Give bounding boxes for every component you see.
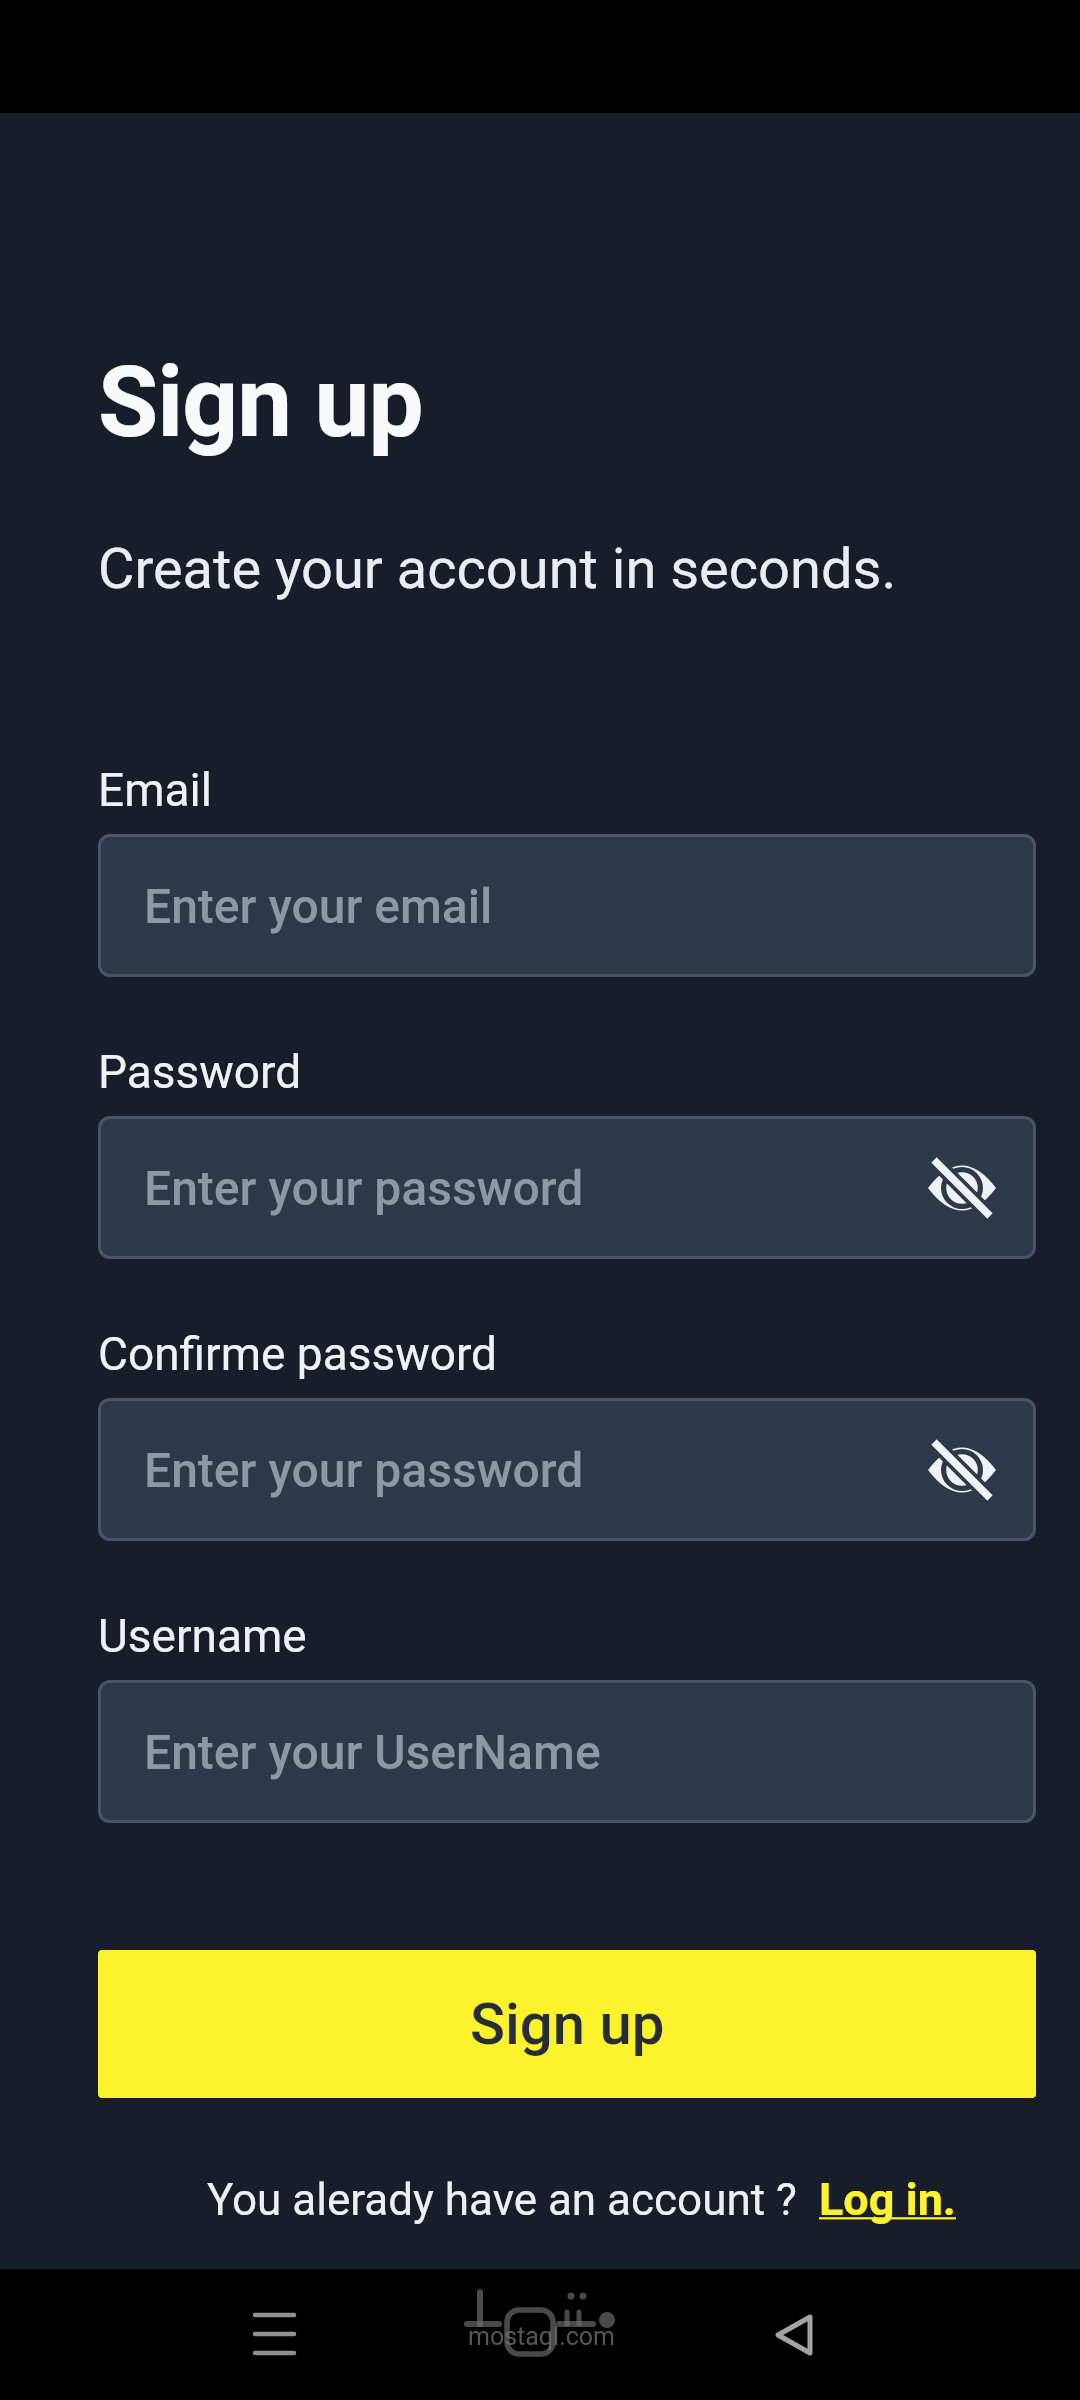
staticText: Sign up xyxy=(98,345,423,460)
staticText: You alerady have an account ? xyxy=(207,2174,797,2226)
button[interactable] xyxy=(926,1152,998,1224)
button[interactable]: Log in. xyxy=(819,2173,956,2226)
staticText: Confirme password xyxy=(98,1327,498,1381)
staticText: Sign up xyxy=(470,1990,665,2058)
staticText: Create your account in seconds. xyxy=(98,536,897,602)
button[interactable] xyxy=(245,2305,305,2363)
staticText: Password xyxy=(98,1045,302,1099)
button[interactable] xyxy=(926,1434,998,1506)
staticText: Enter your UserName xyxy=(144,1724,601,1780)
staticText: mostaql.com xyxy=(468,2322,616,2351)
staticText: Enter your password xyxy=(144,1160,584,1216)
button[interactable]: Enter your email xyxy=(98,834,1036,977)
button[interactable]: Enter your UserName xyxy=(98,1680,1036,1823)
button[interactable] xyxy=(770,2313,816,2357)
button[interactable]: Enter your password xyxy=(98,1398,1036,1541)
staticText: Email xyxy=(98,763,212,817)
button[interactable]: Sign up xyxy=(98,1950,1036,2098)
staticText: Username xyxy=(98,1609,307,1663)
staticText: Enter your email xyxy=(144,878,493,934)
button[interactable]: Enter your password xyxy=(98,1116,1036,1259)
staticText: Enter your password xyxy=(144,1442,584,1498)
